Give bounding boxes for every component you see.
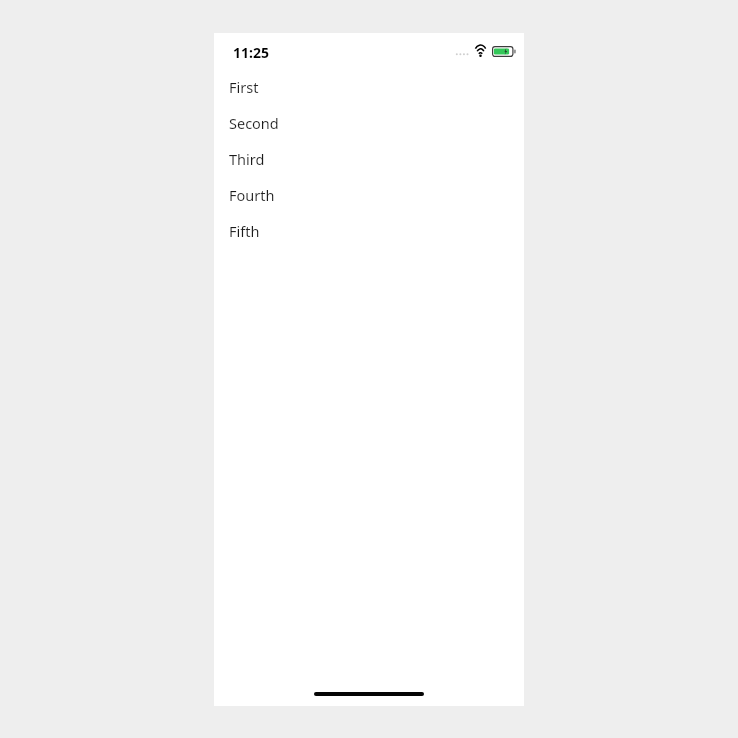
button[interactable]: Third xyxy=(214,141,524,177)
button[interactable]: First xyxy=(214,69,524,105)
staticText: 11:25 xyxy=(233,43,269,62)
button[interactable]: Second xyxy=(214,105,524,141)
staticText: Fifth xyxy=(229,221,260,241)
staticText: Second xyxy=(229,113,279,133)
staticText: Fourth xyxy=(229,185,275,205)
button[interactable]: Fourth xyxy=(214,177,524,213)
button[interactable]: Fifth xyxy=(214,213,524,249)
staticText: Third xyxy=(229,149,265,169)
staticText: First xyxy=(229,77,259,97)
other: Home xyxy=(314,692,424,696)
